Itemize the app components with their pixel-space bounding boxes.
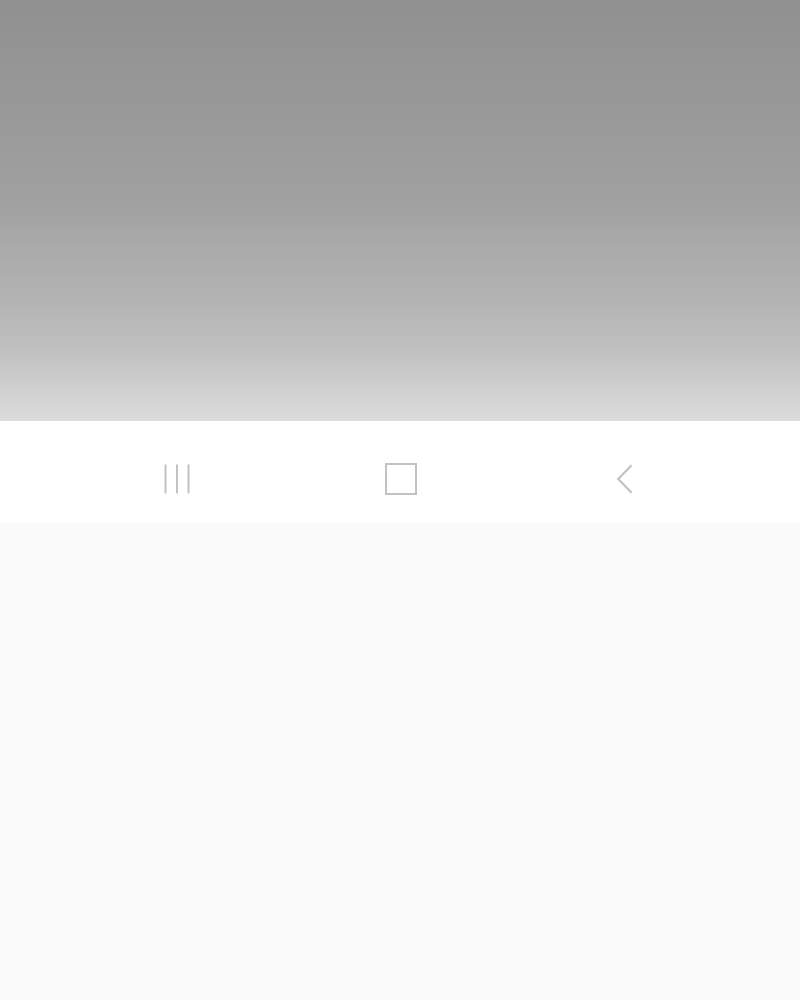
button[interactable]: Recent apps xyxy=(112,421,242,522)
button[interactable]: Back xyxy=(560,421,690,522)
button[interactable]: Home xyxy=(336,421,466,522)
